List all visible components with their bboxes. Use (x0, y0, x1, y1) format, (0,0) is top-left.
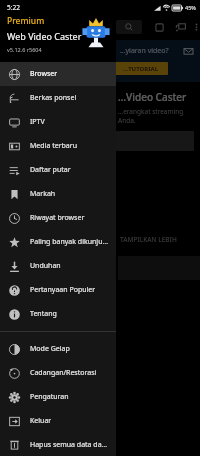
button[interactable]: Browser (0, 62, 116, 86)
button[interactable]: Email (182, 45, 194, 57)
staticText: IPTV (30, 117, 45, 127)
staticText: Premium (7, 15, 45, 27)
staticText: Daftar putar (30, 165, 71, 175)
staticText: Pertanyaan Populer (30, 285, 96, 295)
button[interactable]: Search (116, 20, 142, 34)
button[interactable]: Unduhan (0, 254, 116, 278)
staticText: v5.12.6 r5604 (7, 46, 42, 53)
button[interactable]: More options (193, 20, 200, 34)
button[interactable]: Paling banyak dikunjungi (0, 230, 116, 254)
button[interactable]: Tentang (0, 302, 116, 326)
staticText: Riwayat browser (30, 213, 85, 223)
button[interactable]: TAMPILKAN LEBIH (120, 235, 177, 244)
button[interactable]: Hapus semua data dan keluar (0, 433, 116, 456)
button[interactable]: Berkas ponsel (0, 86, 116, 110)
button[interactable]: IPTV (0, 110, 116, 134)
button[interactable]: Markah (0, 182, 116, 206)
staticText: Hapus semua data dan keluar (30, 440, 110, 450)
button[interactable]: …TUTORIAL (112, 62, 168, 75)
staticText: …erangkat streaming Anda. (118, 107, 200, 125)
button[interactable]: Pengaturan (0, 385, 116, 409)
staticText: …Video Caster (118, 90, 187, 104)
button[interactable]: Tabs (151, 19, 167, 35)
button[interactable]: Riwayat browser (0, 206, 116, 230)
staticText: Cadangan/Restorasi (30, 368, 97, 378)
staticText: …TUTORIAL (123, 65, 158, 73)
staticText: …yiaran video? (120, 46, 169, 56)
button[interactable]: Cadangan/Restorasi (0, 361, 116, 385)
staticText: Keluar (30, 416, 52, 426)
staticText: 45% (185, 4, 196, 11)
button[interactable]: Mode Gelap (0, 337, 116, 361)
button[interactable]: Keluar (0, 409, 116, 433)
staticText: Browser (30, 69, 58, 79)
button[interactable]: Pertanyaan Populer (0, 278, 116, 302)
staticText: Mode Gelap (30, 344, 70, 354)
staticText: 5:22 (7, 3, 20, 12)
staticText: Paling banyak dikunjungi (30, 237, 110, 247)
staticText: Media terbaru (30, 141, 77, 151)
staticText: Unduhan (30, 261, 61, 271)
button[interactable]: Daftar putar (0, 158, 116, 182)
staticText: Web Video Caster (7, 30, 82, 42)
staticText: Tentang (30, 309, 57, 319)
staticText: Markah (30, 189, 56, 199)
button[interactable]: Cast (173, 19, 189, 35)
staticText: Pengaturan (30, 392, 69, 402)
staticText: Berkas ponsel (30, 93, 77, 103)
button[interactable]: Media terbaru (0, 134, 116, 158)
